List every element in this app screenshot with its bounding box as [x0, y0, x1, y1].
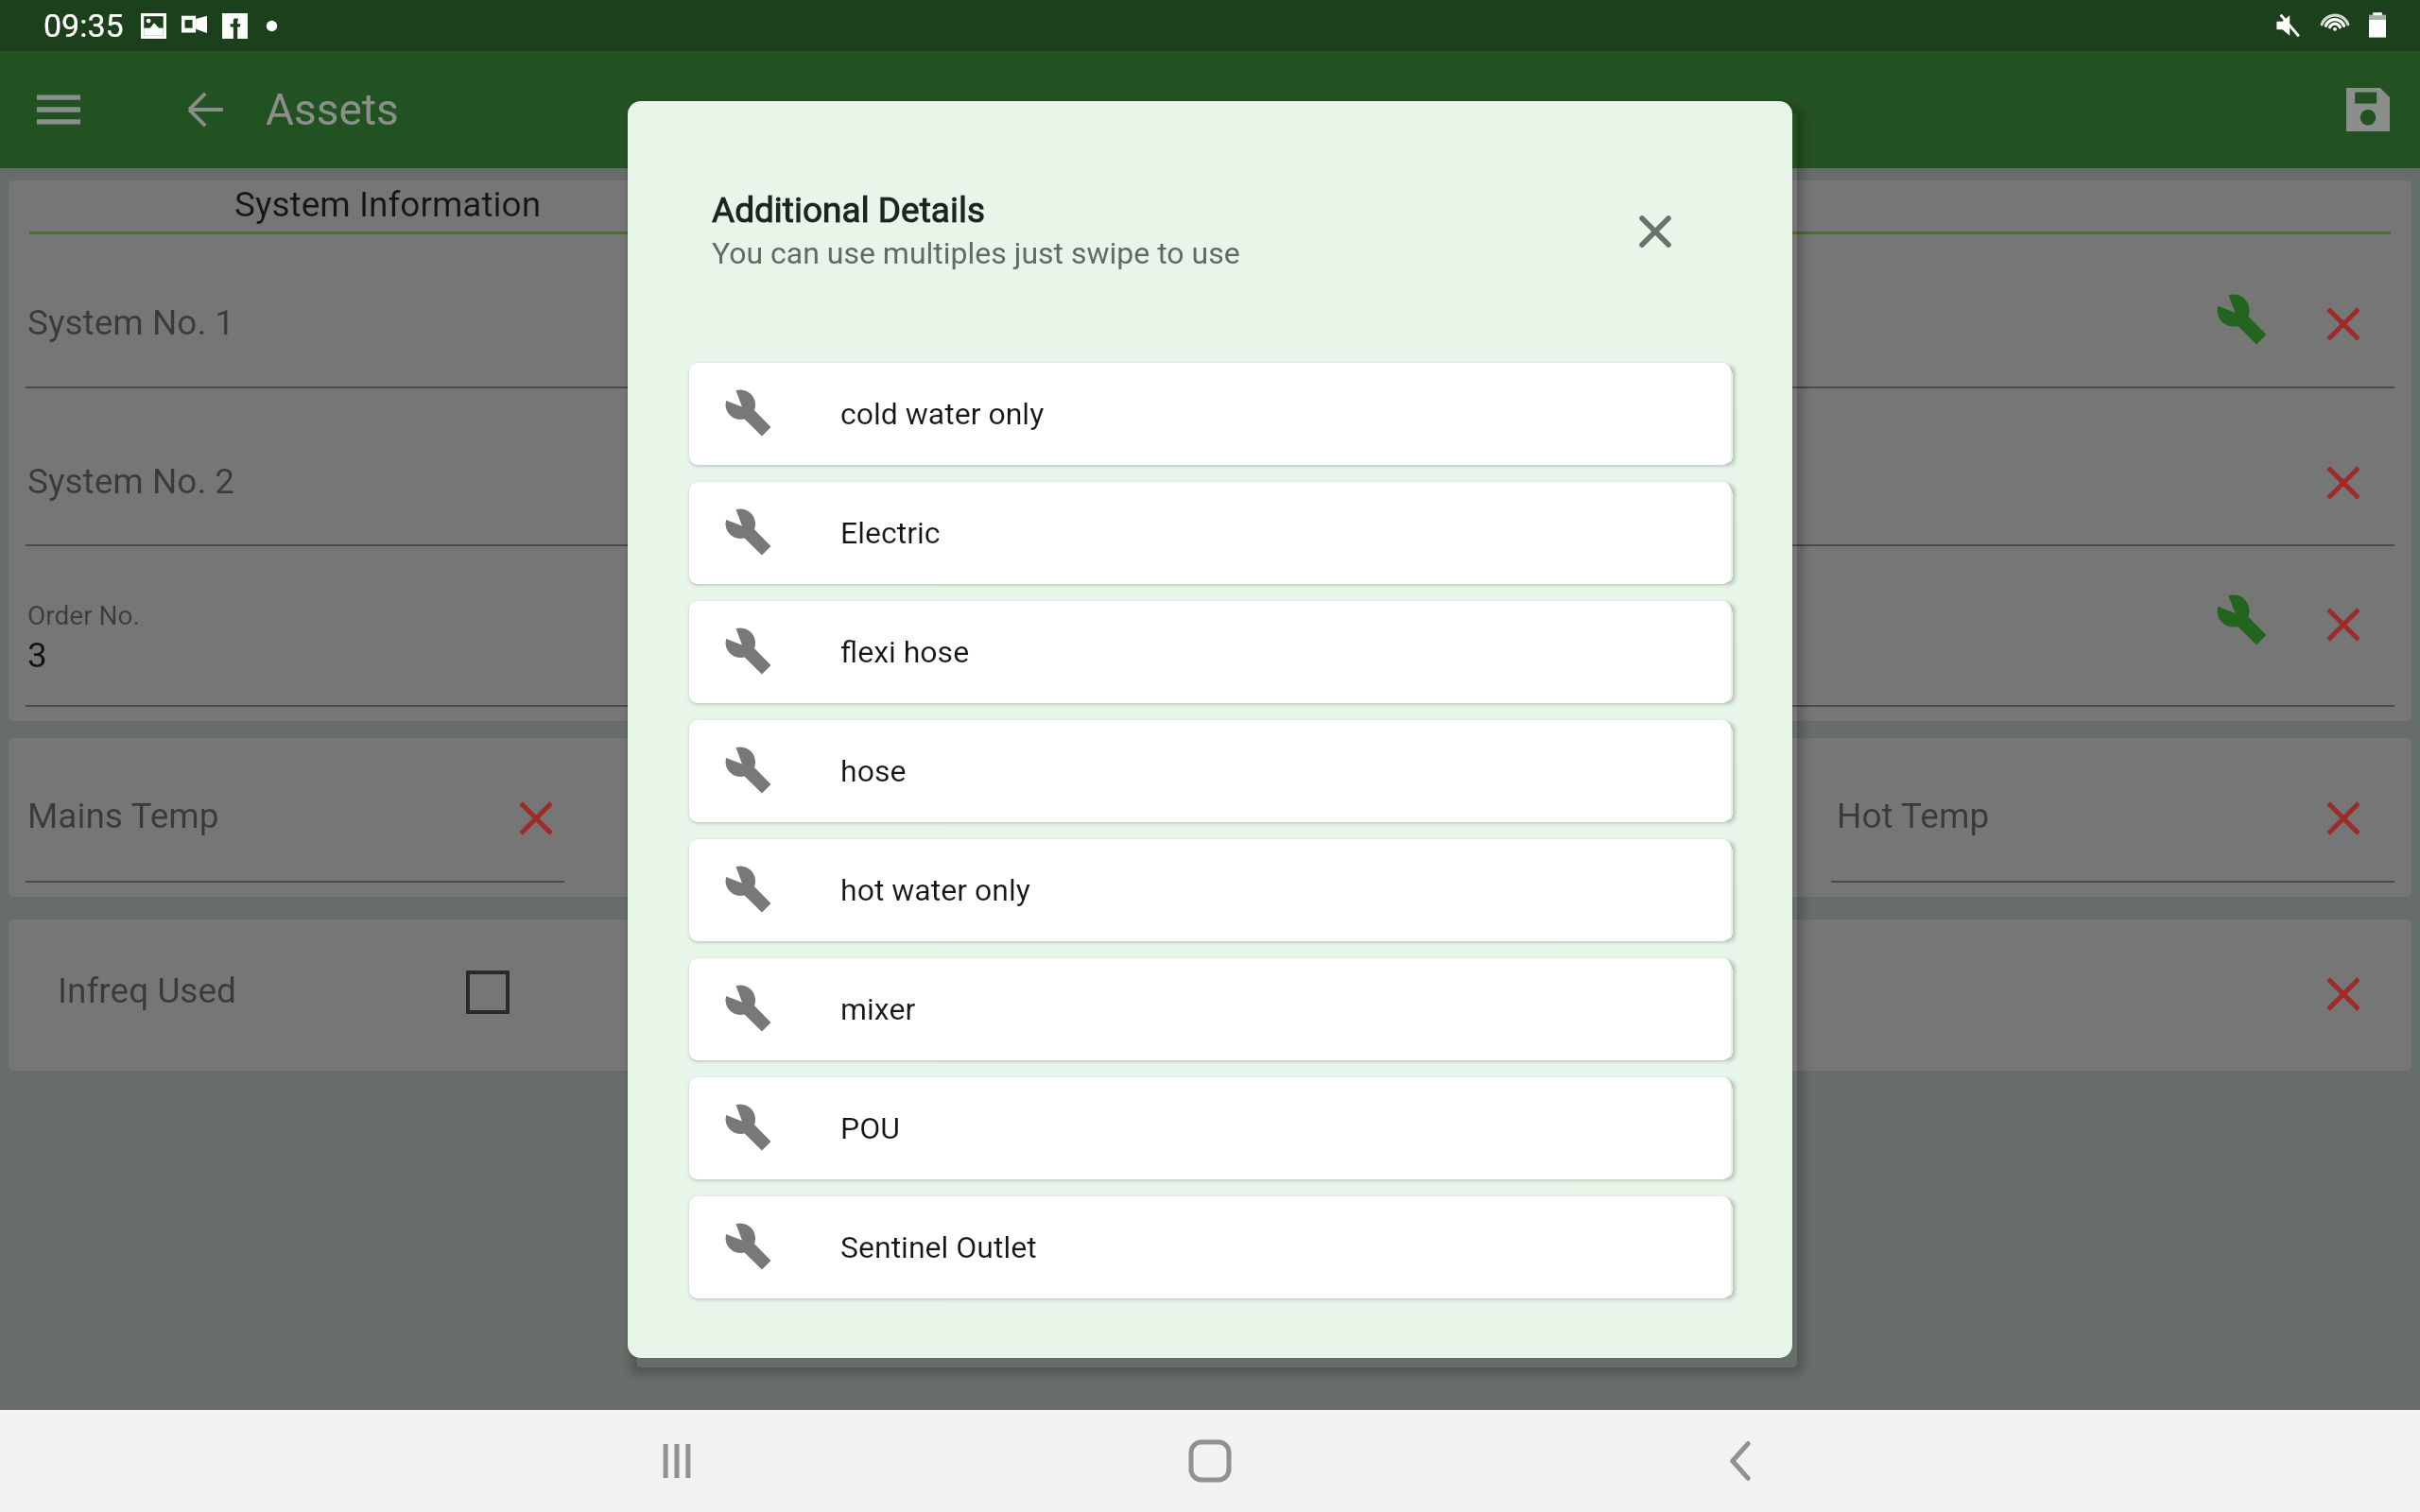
staticText: Infreq Used [58, 971, 236, 1011]
button[interactable]: cold water only [689, 363, 1731, 465]
button[interactable]: Clear [2328, 468, 2359, 498]
button[interactable]: Clear [2328, 309, 2359, 339]
staticText: System No. 2 [27, 461, 235, 502]
button[interactable]: Clear mains temp [521, 803, 551, 833]
button[interactable]: hose [689, 720, 1731, 822]
staticText: cold water only [840, 396, 1045, 432]
staticText: mixer [840, 991, 916, 1027]
staticText: Assets [266, 84, 399, 135]
staticText: Hot Temp [1837, 796, 1990, 836]
staticText: System No. 1 [27, 302, 235, 343]
button[interactable]: Back [1688, 1410, 1794, 1512]
staticText: hose [840, 753, 907, 789]
button[interactable]: Service [2217, 595, 2268, 646]
staticText: Electric [840, 515, 941, 551]
button[interactable]: Menu [13, 64, 104, 155]
button[interactable]: Infrequently used [468, 972, 508, 1012]
staticText: System Information [234, 184, 542, 225]
staticText: Mains Temp [27, 796, 219, 836]
button[interactable]: Electric [689, 482, 1731, 584]
button[interactable]: Clear [2328, 979, 2359, 1009]
button[interactable]: Clear hot temp [2328, 803, 2359, 833]
button[interactable]: POU [689, 1077, 1731, 1179]
button[interactable]: Close [1618, 195, 1692, 268]
staticText: hot water only [840, 872, 1030, 908]
button[interactable]: Save [2317, 59, 2419, 161]
staticText: Additional Details [712, 190, 986, 231]
button[interactable]: mixer [689, 958, 1731, 1060]
button[interactable]: Clear [2328, 610, 2359, 640]
staticText: 3 [27, 635, 47, 676]
button[interactable]: Recents [624, 1410, 730, 1512]
button[interactable]: Sentinel Outlet [689, 1196, 1731, 1298]
staticText: 09:35 [43, 7, 124, 44]
button[interactable]: Back [165, 69, 247, 150]
staticText: flexi hose [840, 634, 970, 670]
staticText: Sentinel Outlet [840, 1229, 1037, 1265]
button[interactable]: Home [1157, 1410, 1263, 1512]
staticText: POU [840, 1110, 900, 1146]
staticText: You can use multiples just swipe to use [712, 235, 1240, 271]
button[interactable]: hot water only [689, 839, 1731, 941]
button[interactable]: Service [2217, 295, 2268, 346]
button[interactable]: flexi hose [689, 601, 1731, 703]
staticText: Order No. [27, 600, 140, 631]
